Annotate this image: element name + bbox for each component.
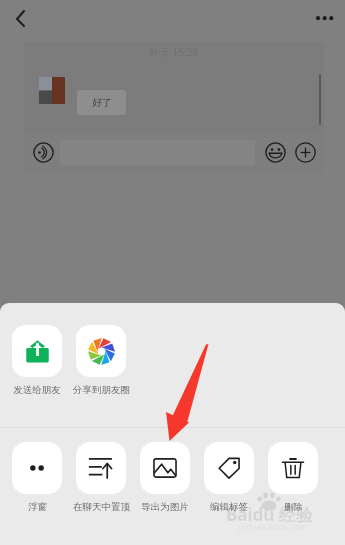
staticText: 导出为图片 [141, 501, 189, 513]
staticText: 昨天 15:26 [150, 45, 199, 59]
button[interactable]: Voice input [33, 142, 54, 163]
staticText: 浮窗 [28, 501, 47, 513]
staticText: jingyan.baidu.com [238, 521, 308, 532]
button[interactable]: 在聊天中置顶 [76, 442, 126, 513]
button[interactable]: Emoji [265, 142, 286, 163]
button[interactable]: 发送给朋友 [12, 325, 62, 396]
staticText: Baidu 经验 [226, 503, 313, 526]
button[interactable]: 导出为图片 [140, 442, 190, 513]
staticText: 编辑标签 [210, 501, 248, 513]
button[interactable]: 编辑标签 [204, 442, 254, 513]
staticText: 分享到朋友圈 [73, 384, 130, 396]
button[interactable]: More options [308, 4, 340, 36]
button[interactable]: 浮窗 [12, 442, 62, 513]
button[interactable]: More [295, 142, 316, 163]
staticText: 发送给朋友 [13, 384, 61, 396]
staticText: 删除 [284, 501, 303, 513]
staticText: 好了 [92, 96, 112, 109]
button[interactable]: Back [5, 4, 35, 34]
button[interactable]: 删除 [268, 442, 318, 513]
button[interactable]: 分享到朋友圈 [76, 325, 126, 396]
staticText: 在聊天中置顶 [73, 501, 130, 513]
